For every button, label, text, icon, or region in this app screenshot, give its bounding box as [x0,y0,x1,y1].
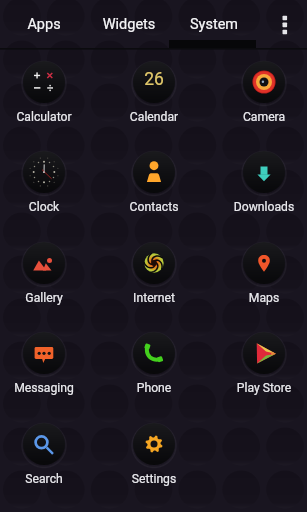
button[interactable]: Phone [104,328,204,400]
button[interactable]: Calculator [0,57,94,129]
button[interactable]: Play Store [214,328,307,400]
staticText: Apps [0,16,89,56]
button[interactable]: Camera [214,57,307,129]
button[interactable]: Internet [104,238,204,310]
button[interactable]: Downloads [214,147,307,219]
staticText: Search [0,472,94,512]
staticText: Calculator [0,110,94,182]
staticText: Contacts [104,200,204,272]
staticText: Calendar [104,110,204,182]
staticText: Clock [0,200,94,272]
staticText: Camera [214,110,307,182]
staticText: 26 [104,69,204,141]
staticText: Downloads [214,200,307,272]
button[interactable]: Widgets [84,4,174,44]
button[interactable]: Clock [0,147,94,219]
staticText: Play Store [214,381,307,453]
staticText: System [169,16,259,56]
staticText: Widgets [84,16,174,56]
staticText: Messaging [0,381,94,453]
staticText: Phone [104,381,204,453]
staticText: Maps [214,291,307,363]
button[interactable]: Apps [0,4,89,44]
staticText: Settings [104,472,204,512]
button[interactable]: Maps [214,238,307,310]
button[interactable]: Gallery [0,238,94,310]
button[interactable]: More options [271,6,299,44]
button[interactable]: System [169,4,259,44]
button[interactable]: Settings [104,419,204,491]
button[interactable]: Messaging [0,328,94,400]
button[interactable]: Contacts [104,147,204,219]
staticText: Gallery [0,291,94,363]
staticText: Internet [104,291,204,363]
button[interactable]: Search [0,419,94,491]
button[interactable]: 26 [104,57,204,129]
